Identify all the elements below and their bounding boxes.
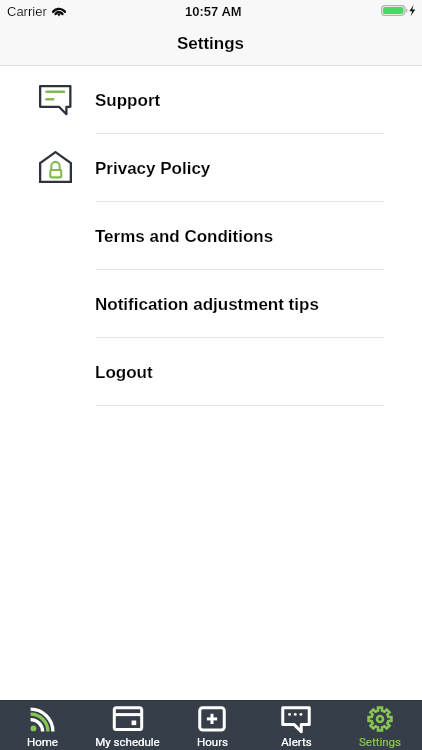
button[interactable]: Settings — [338, 700, 422, 750]
staticText: Alerts — [281, 735, 312, 748]
staticText: 10:57 AM — [185, 4, 242, 19]
staticText: Home — [27, 735, 58, 748]
staticText: Terms and Conditions — [95, 227, 274, 246]
button[interactable]: Home — [0, 700, 85, 750]
button[interactable]: Notification adjustment tips — [0, 270, 422, 338]
button[interactable]: Hours — [170, 700, 254, 750]
staticText: Support — [95, 91, 161, 110]
staticText: Logout — [95, 363, 153, 382]
staticText: Notification adjustment tips — [95, 295, 319, 314]
button[interactable]: Alerts — [254, 700, 338, 750]
staticText: Carrier — [7, 4, 47, 19]
staticText: Settings — [177, 34, 245, 53]
button[interactable]: My schedule — [85, 700, 170, 750]
button[interactable]: Logout — [0, 338, 422, 406]
button[interactable]: Privacy Policy — [0, 134, 422, 202]
staticText: Hours — [197, 735, 228, 748]
button[interactable]: Terms and Conditions — [0, 202, 422, 270]
button[interactable]: Support — [0, 66, 422, 134]
staticText: Settings — [359, 735, 401, 748]
staticText: Privacy Policy — [95, 159, 211, 178]
staticText: My schedule — [95, 735, 160, 748]
